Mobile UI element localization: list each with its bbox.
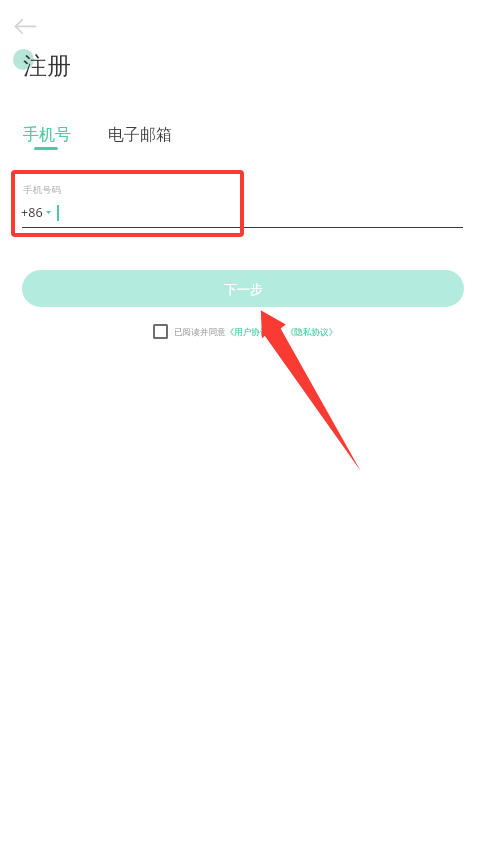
staticText: 手机号码 bbox=[23, 184, 61, 196]
button[interactable]: 电子邮箱 bbox=[102, 121, 176, 153]
staticText: 手机号 bbox=[23, 125, 71, 145]
button[interactable]: Agree to terms checkbox bbox=[153, 324, 168, 339]
staticText: 下一步 bbox=[224, 281, 263, 297]
button[interactable]: 手机号 bbox=[17, 121, 75, 153]
button[interactable]: 已阅读并同意《用户协议》 《隐私协议》 bbox=[174, 326, 338, 338]
staticText: +86 bbox=[21, 204, 43, 221]
button[interactable]: Back bbox=[6, 8, 44, 46]
button[interactable]: 下一步 bbox=[22, 270, 464, 307]
staticText: 注册 bbox=[23, 51, 71, 81]
staticText: 电子邮箱 bbox=[108, 125, 172, 145]
